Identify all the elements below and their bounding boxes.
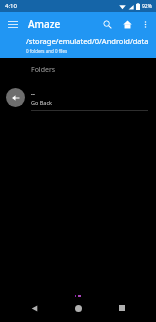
staticText: ..: [31, 88, 35, 98]
button[interactable]: Home: [68, 298, 88, 318]
button[interactable]: More options: [137, 16, 153, 32]
button[interactable]: Home: [118, 15, 136, 33]
staticText: 4:10: [5, 2, 17, 10]
button[interactable]: Search: [98, 15, 116, 33]
staticText: Folders: [31, 65, 56, 75]
staticText: 92%: [142, 3, 152, 10]
button[interactable]: Open navigation drawer: [4, 15, 22, 33]
button[interactable]: Back: [24, 298, 44, 318]
staticText: /storage/emulated/0/Android/data: [26, 36, 149, 46]
staticText: 0 folders and 0 files: [26, 48, 68, 54]
button[interactable]: ..: [0, 84, 156, 110]
button[interactable]: Recent apps: [112, 298, 132, 318]
staticText: Amaze: [28, 17, 61, 31]
staticText: Go Back: [31, 99, 52, 106]
